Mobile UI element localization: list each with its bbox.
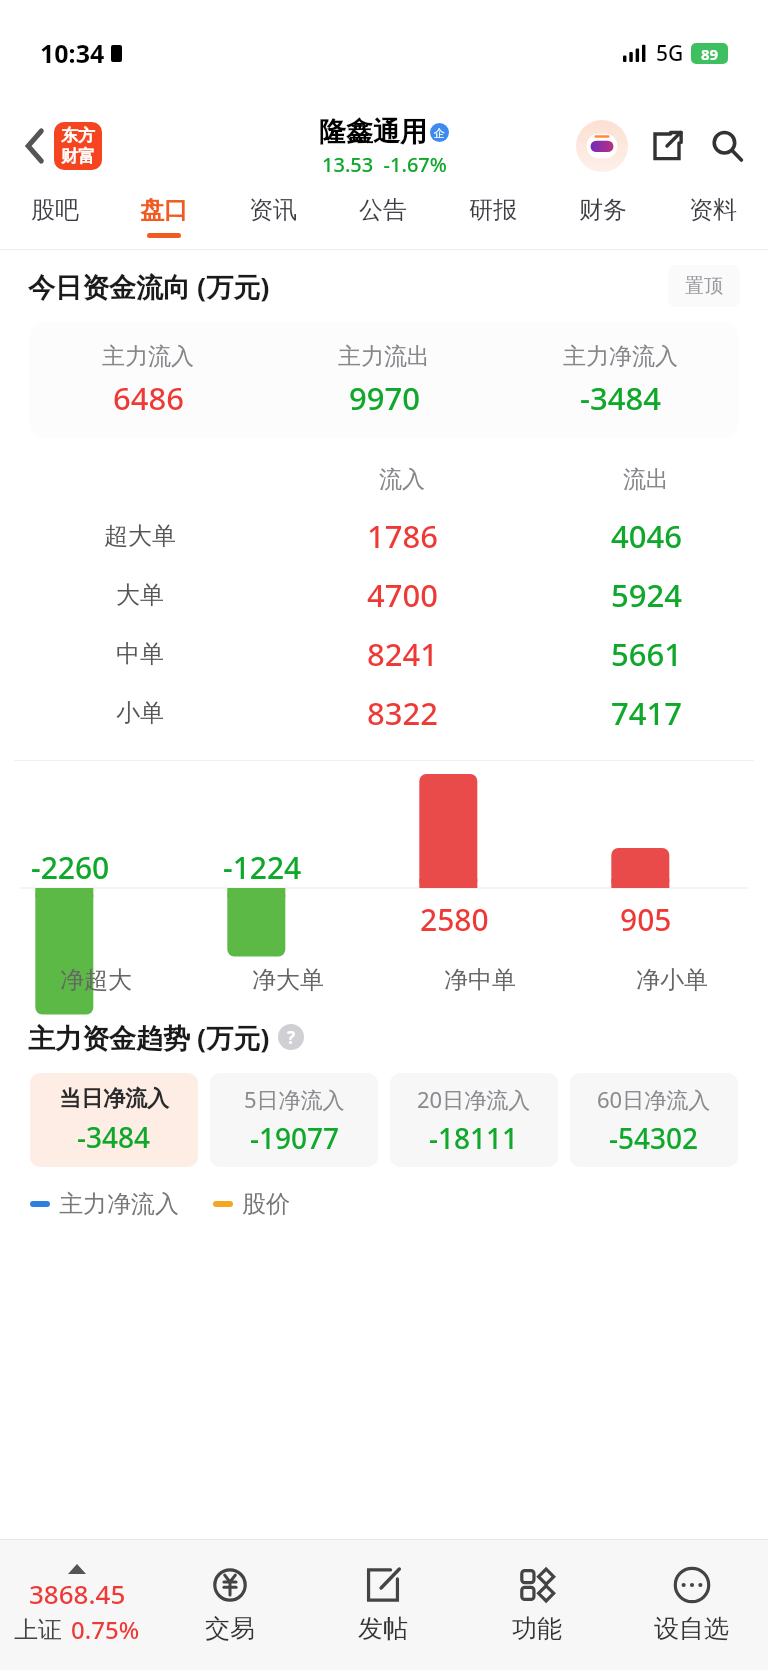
button[interactable]: 研报 xyxy=(438,187,548,249)
staticText: 股价 xyxy=(242,1189,290,1219)
staticText: -18111 xyxy=(429,1119,519,1157)
staticText: 发帖 xyxy=(358,1613,408,1644)
button[interactable]: AI assistant xyxy=(576,120,628,172)
button[interactable]: 资料 xyxy=(658,187,768,249)
button[interactable]: 大单 xyxy=(0,565,768,624)
staticText: 净中单 xyxy=(444,965,516,995)
staticText: 主力净流入 xyxy=(563,342,678,371)
staticText: 905 xyxy=(620,899,672,940)
button[interactable]: 发帖 xyxy=(306,1540,460,1670)
staticText: 置顶 xyxy=(685,274,723,298)
staticText: 资讯 xyxy=(249,195,297,225)
staticText: 研报 xyxy=(469,195,517,225)
staticText: 公告 xyxy=(359,195,407,225)
button[interactable]: Share xyxy=(644,123,690,169)
staticText: 3868.45 xyxy=(29,1576,126,1611)
button[interactable]: 当日净流入 xyxy=(30,1073,198,1167)
button[interactable]: 资讯 xyxy=(218,187,328,249)
button[interactable]: 超大单 xyxy=(0,506,768,565)
staticText: 盘口 xyxy=(140,195,188,225)
staticText: 10:34 xyxy=(40,36,105,70)
button[interactable]: 置顶 xyxy=(668,265,740,307)
button[interactable]: 中单 xyxy=(0,624,768,683)
button[interactable]: 60日净流入 xyxy=(570,1073,738,1167)
button[interactable]: 交易 xyxy=(153,1540,306,1670)
staticText: 当日净流入 xyxy=(59,1085,169,1113)
staticText: 4700 xyxy=(367,574,438,616)
button[interactable]: 股吧 xyxy=(0,187,109,249)
button[interactable]: 3868.45 xyxy=(0,1540,153,1670)
staticText: 净大单 xyxy=(252,965,324,995)
staticText: 主力流出 xyxy=(338,342,430,371)
button[interactable]: 5日净流入 xyxy=(210,1073,378,1167)
staticText: 东方 xyxy=(61,125,95,146)
button[interactable]: Back xyxy=(10,121,60,171)
staticText: 小单 xyxy=(116,698,164,728)
staticText: 60日净流入 xyxy=(597,1084,711,1114)
staticText: 资料 xyxy=(689,195,737,225)
staticText: 大单 xyxy=(116,580,164,610)
staticText: 今日资金流向 (万元) xyxy=(28,268,270,305)
staticText: 中单 xyxy=(116,639,164,669)
staticText: 超大单 xyxy=(104,521,176,551)
staticText: 功能 xyxy=(512,1613,562,1644)
staticText: 5924 xyxy=(611,574,682,616)
button[interactable]: 盘口 xyxy=(109,187,218,249)
staticText: 财务 xyxy=(579,195,627,225)
button[interactable]: 设自选 xyxy=(614,1540,768,1670)
staticText: 交易 xyxy=(205,1613,255,1644)
staticText: 8322 xyxy=(367,692,438,734)
button[interactable]: 隆鑫通用 xyxy=(319,115,449,178)
button[interactable]: 小单 xyxy=(0,683,768,742)
staticText: 1786 xyxy=(367,515,438,557)
staticText: 上证 xyxy=(14,1615,62,1645)
staticText: 股吧 xyxy=(31,195,79,225)
button[interactable]: 财务 xyxy=(548,187,658,249)
staticText: 企 xyxy=(434,126,445,140)
staticText: 设自选 xyxy=(654,1613,729,1644)
staticText: 6486 xyxy=(113,377,184,419)
button[interactable]: 东方财富 xyxy=(54,122,102,170)
staticText: 净超大 xyxy=(60,965,132,995)
staticText: 5661 xyxy=(611,633,682,675)
staticText: 2580 xyxy=(420,899,489,940)
staticText: 财富 xyxy=(61,146,95,167)
staticText: 8241 xyxy=(367,633,438,675)
staticText: 主力净流入 xyxy=(59,1189,179,1219)
staticText: 13.53 -1.67% xyxy=(322,151,447,178)
staticText: 流出 xyxy=(623,465,669,494)
staticText: -3484 xyxy=(77,1118,151,1156)
staticText: 隆鑫通用 xyxy=(319,115,427,149)
staticText: -2260 xyxy=(31,847,110,888)
button[interactable]: 20日净流入 xyxy=(390,1073,558,1167)
staticText: 主力流入 xyxy=(102,342,194,371)
staticText: 净小单 xyxy=(636,965,708,995)
staticText: 89 xyxy=(701,44,719,64)
staticText: 5日净流入 xyxy=(244,1084,345,1114)
staticText: -3484 xyxy=(580,377,661,419)
button[interactable]: 主力流入 xyxy=(30,322,738,438)
button[interactable]: 公告 xyxy=(328,187,438,249)
staticText: 4046 xyxy=(611,515,682,557)
staticText: -1224 xyxy=(223,847,302,888)
staticText: 主力资金趋势 (万元) xyxy=(28,1019,270,1056)
staticText: 0.75% xyxy=(71,1613,140,1646)
button[interactable]: Help xyxy=(278,1024,304,1050)
staticText: ? xyxy=(287,1026,296,1049)
button[interactable]: 功能 xyxy=(460,1540,614,1670)
staticText: -19077 xyxy=(250,1119,340,1157)
button[interactable]: Search xyxy=(704,123,750,169)
staticText: 9970 xyxy=(349,377,420,419)
staticText: -54302 xyxy=(609,1119,699,1157)
staticText: 流入 xyxy=(379,465,425,494)
staticText: 7417 xyxy=(611,692,682,734)
staticText: 5G xyxy=(656,39,684,68)
staticText: 20日净流入 xyxy=(417,1084,531,1114)
